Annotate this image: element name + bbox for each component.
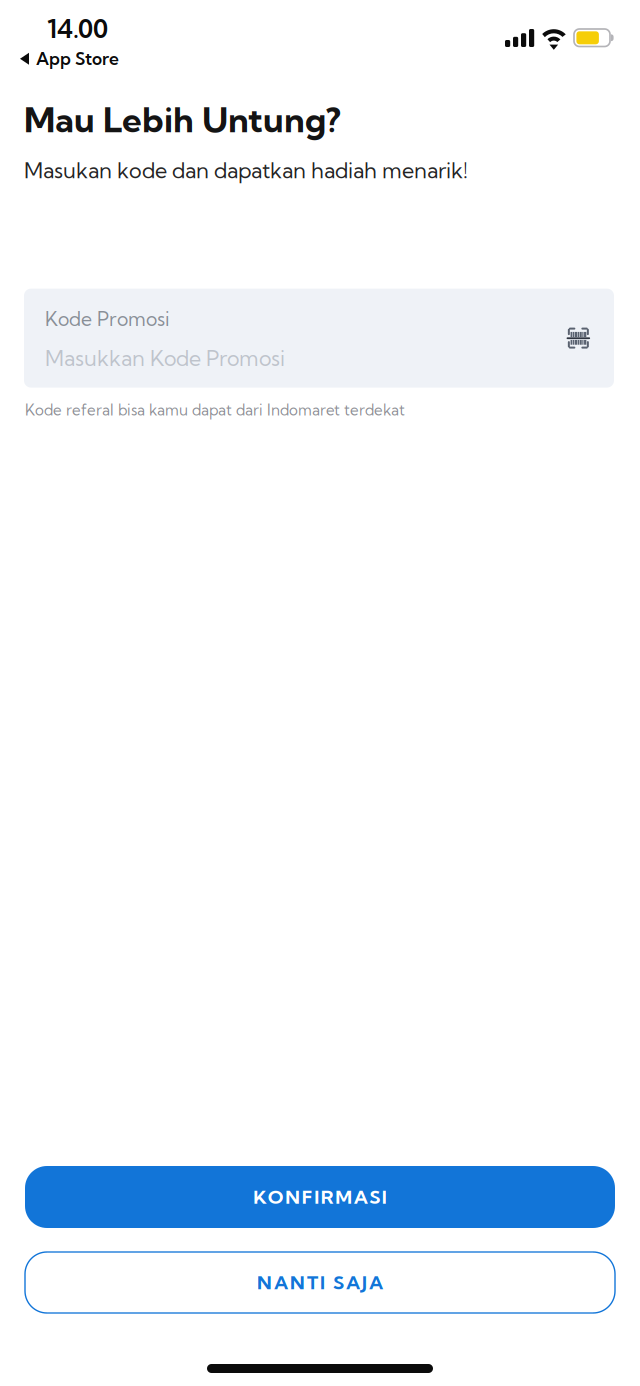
staticText: Masukkan Kode Promosi — [45, 345, 285, 371]
staticText: 14.00 — [47, 13, 108, 44]
staticText: NANTI SAJA — [257, 1271, 383, 1294]
staticText: App Store — [36, 48, 119, 69]
button[interactable]: Scan promo code — [555, 289, 603, 388]
button[interactable]: KONFIRMASI — [25, 1166, 615, 1228]
staticText: Mau Lebih Untung? — [24, 98, 341, 141]
button[interactable]: App Store — [0, 45, 131, 72]
staticText: Masukan kode dan dapatkan hadiah menarik… — [24, 157, 468, 184]
staticText: Kode referal bisa kamu dapat dari Indoma… — [25, 401, 405, 419]
staticText: KONFIRMASI — [253, 1185, 387, 1209]
button[interactable]: Kode Promosi — [24, 289, 544, 388]
staticText: Kode Promosi — [45, 307, 170, 331]
button[interactable]: NANTI SAJA — [25, 1252, 615, 1313]
